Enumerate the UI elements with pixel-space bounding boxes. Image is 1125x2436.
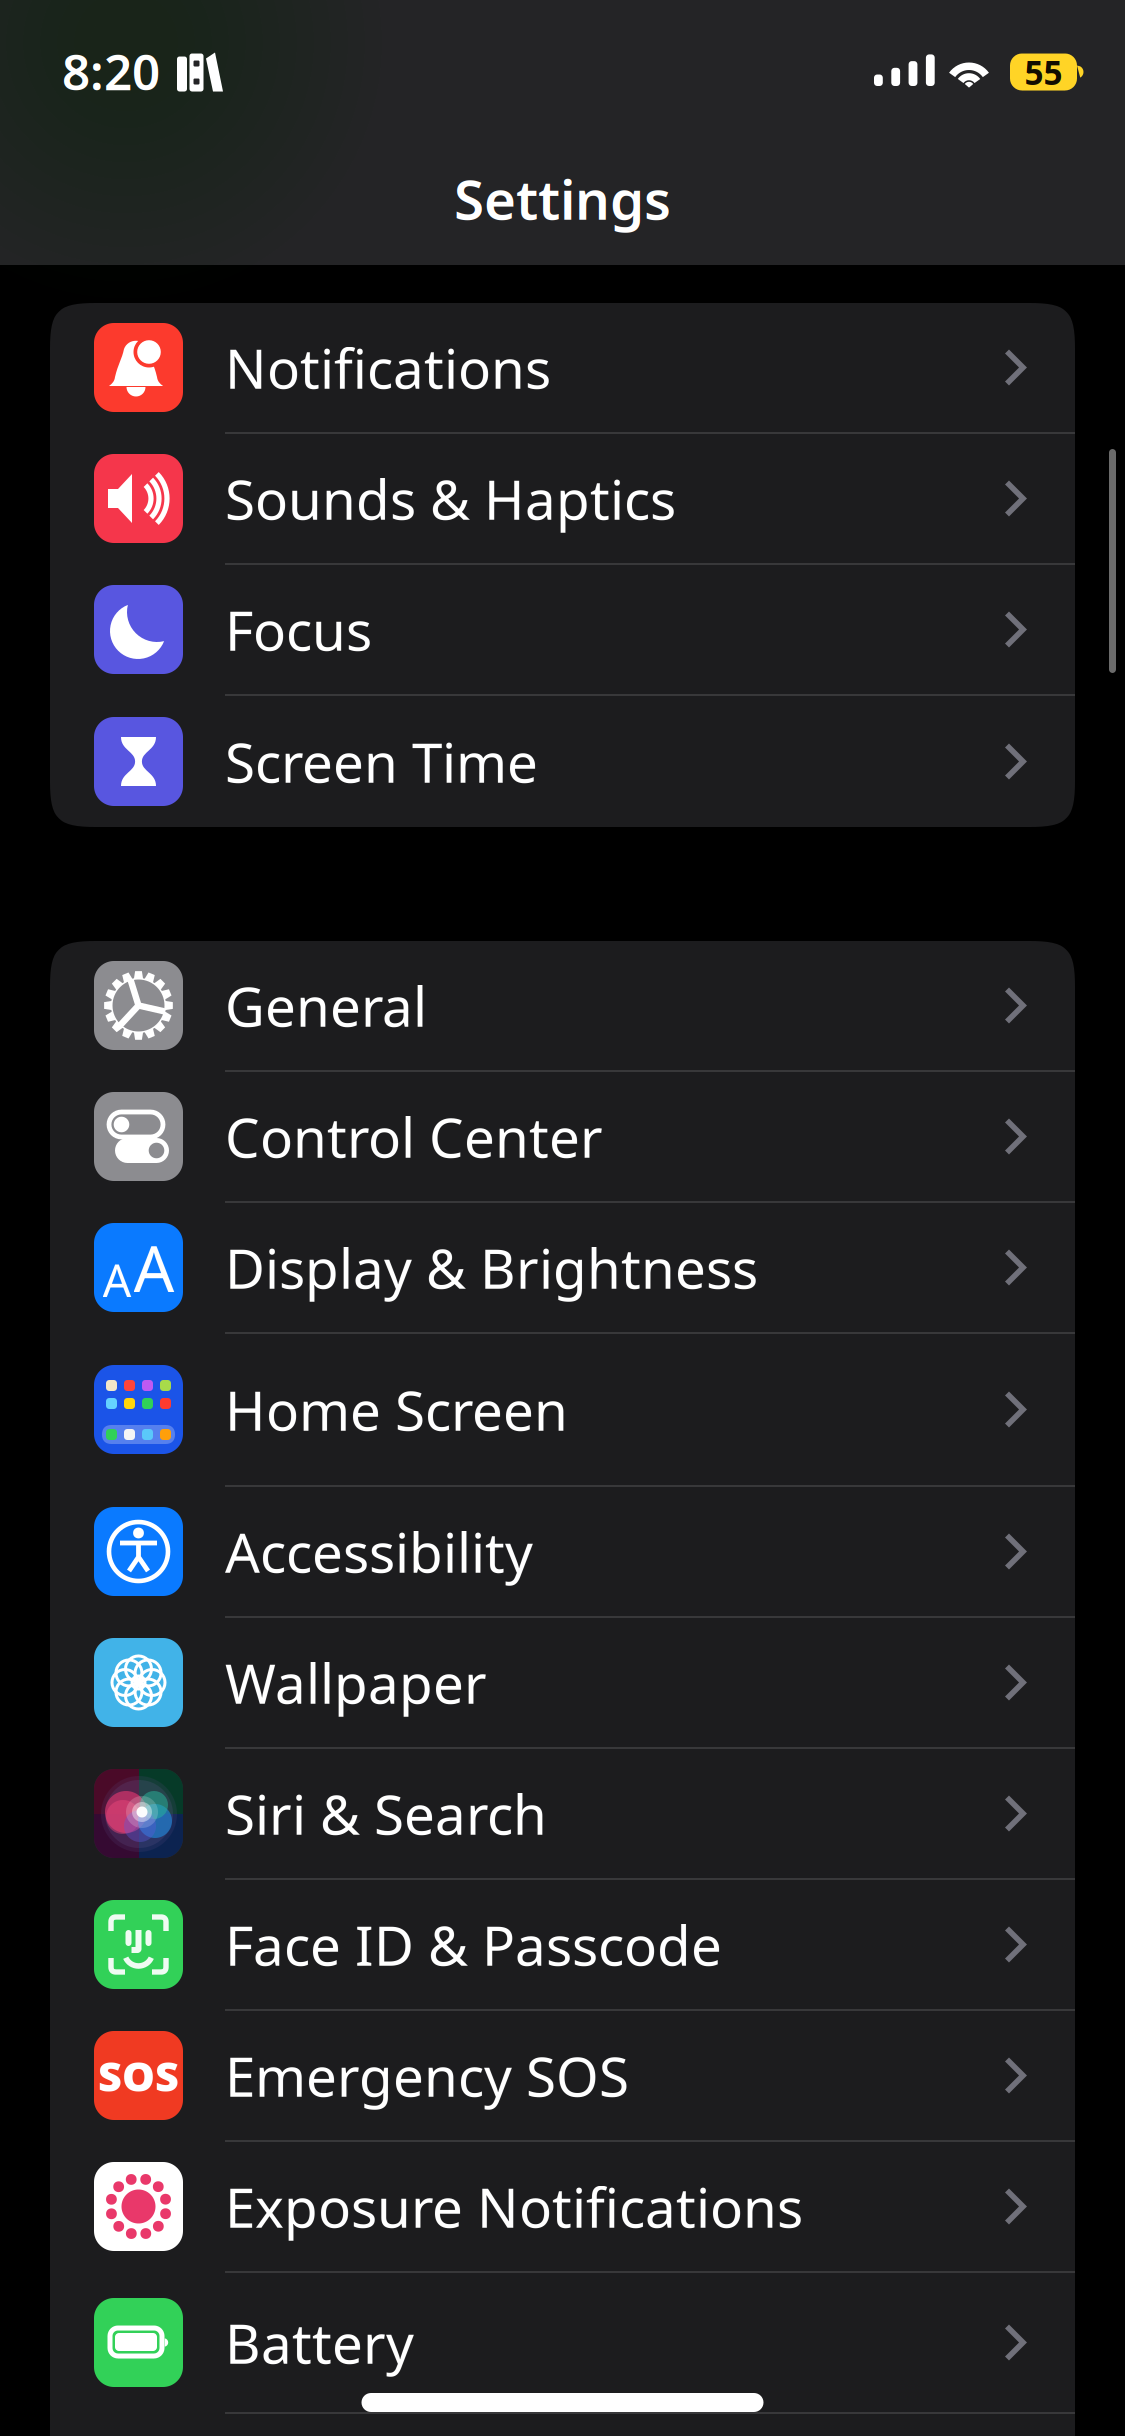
staticText: Accessibility	[225, 1515, 533, 1588]
button[interactable]: Sounds & Haptics	[50, 434, 1075, 565]
staticText: Settings	[454, 162, 671, 235]
staticText: Exposure Notifications	[225, 2170, 803, 2243]
staticText: A	[102, 1250, 131, 1310]
staticText: Focus	[225, 593, 372, 666]
button[interactable]: Wallpaper	[50, 1618, 1075, 1749]
button[interactable]: Screen Time	[50, 696, 1075, 827]
staticText: Emergency SOS	[225, 2039, 629, 2112]
staticText: 55	[1024, 50, 1062, 94]
staticText: Siri & Search	[225, 1777, 547, 1850]
staticText: SOS	[98, 2048, 179, 2103]
staticText: Sounds & Haptics	[225, 462, 676, 535]
button[interactable]: Notifications	[50, 303, 1075, 434]
staticText: Display & Brightness	[225, 1231, 758, 1304]
staticText: Wallpaper	[225, 1646, 487, 1719]
button[interactable]: General	[50, 941, 1075, 1072]
staticText: Screen Time	[225, 725, 538, 798]
button[interactable]: Control Center	[50, 1072, 1075, 1203]
button[interactable]: Accessibility	[50, 1487, 1075, 1618]
button[interactable]: Settings	[0, 132, 1125, 265]
staticText: Notifications	[225, 331, 551, 404]
staticText: Battery	[225, 2306, 414, 2379]
button[interactable]: SOS	[50, 2011, 1075, 2142]
staticText: General	[225, 969, 427, 1042]
button[interactable]: Siri & Search	[50, 1749, 1075, 1880]
button[interactable]: Battery	[50, 2273, 1075, 2414]
button[interactable]: Home Screen	[50, 1334, 1075, 1487]
button[interactable]: Face ID & Passcode	[50, 1880, 1075, 2011]
button[interactable]: Focus	[50, 565, 1075, 696]
button[interactable]: Exposure Notifications	[50, 2142, 1075, 2273]
staticText: A	[133, 1225, 174, 1310]
staticText: Home Screen	[225, 1373, 568, 1446]
staticText: 8:20	[62, 38, 160, 104]
staticText: Face ID & Passcode	[225, 1908, 722, 1981]
staticText: Control Center	[225, 1100, 603, 1173]
button[interactable]: A	[50, 1203, 1075, 1334]
